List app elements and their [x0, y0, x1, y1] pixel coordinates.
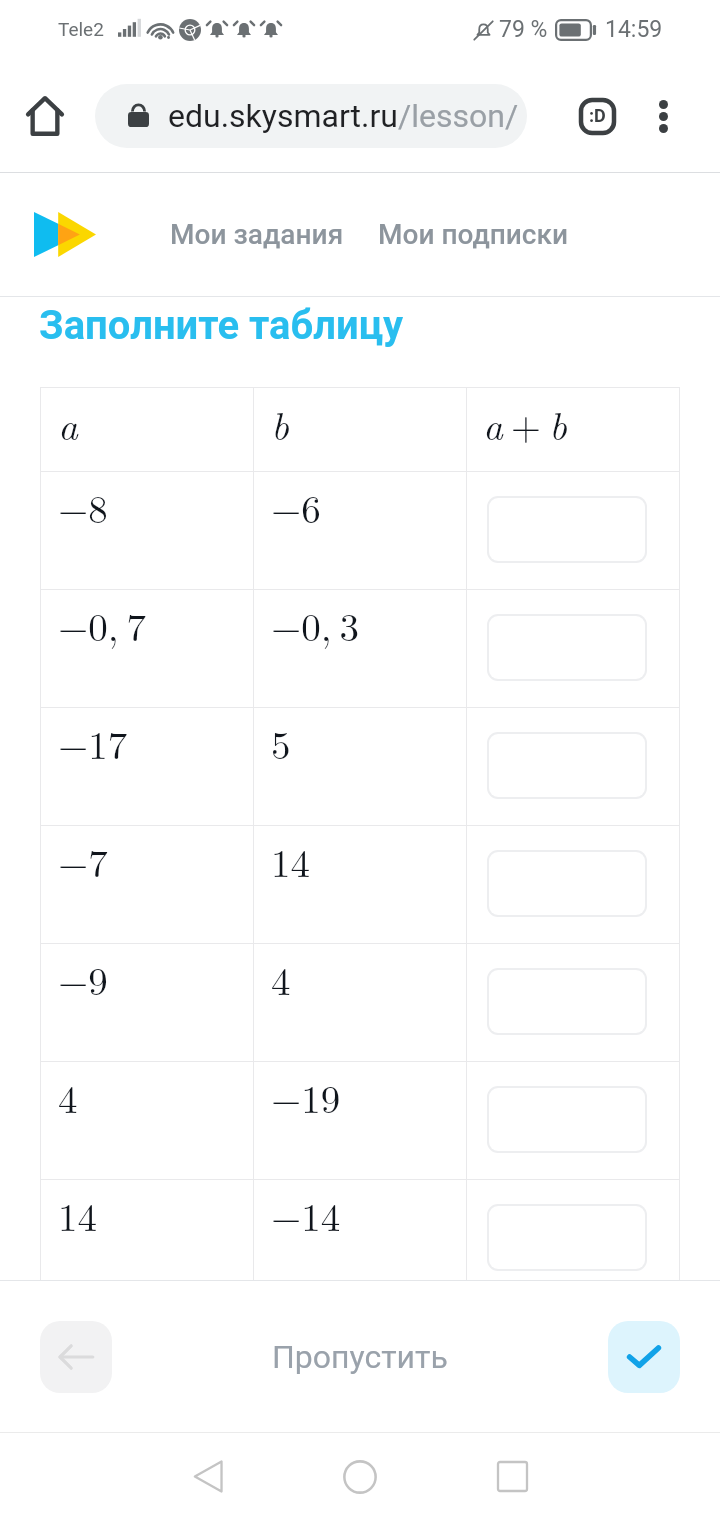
button[interactable]: edu.skysmart.ru: [95, 84, 527, 148]
staticText: 79 %: [499, 16, 548, 43]
staticText: 14: [271, 833, 311, 888]
staticText: Tele2: [58, 18, 104, 40]
staticText: −0, 7: [58, 597, 146, 652]
staticText: −19: [271, 1069, 341, 1124]
button[interactable]: Мои задания: [170, 208, 344, 261]
button[interactable]: Пропустить: [256, 1324, 464, 1390]
staticText: Мои подписки: [378, 218, 569, 251]
button[interactable]: Back: [40, 1321, 112, 1393]
staticText: Мои задания: [170, 218, 344, 251]
button[interactable]: Back: [152, 1433, 264, 1520]
staticText: −17: [58, 715, 128, 770]
button[interactable]: Confirm: [608, 1321, 680, 1393]
button[interactable]: Recents: [456, 1433, 568, 1520]
staticText: −14: [271, 1187, 341, 1242]
staticText: +: [503, 396, 549, 451]
staticText: a: [58, 396, 78, 451]
button[interactable]: Мои подписки: [378, 208, 569, 261]
staticText: Пропустить: [272, 1338, 448, 1376]
staticText: 4: [58, 1069, 78, 1124]
staticText: edu.skysmart.ru: [168, 97, 398, 135]
staticText: b: [271, 396, 289, 451]
staticText: Заполните таблицу: [39, 302, 404, 349]
staticText: 4: [271, 951, 291, 1006]
staticText: /lesson/: [398, 97, 519, 135]
staticText: 5: [271, 715, 291, 770]
button[interactable]: Tabs: [568, 87, 626, 145]
button[interactable]: Home: [14, 85, 76, 147]
button[interactable]: Home: [304, 1433, 416, 1520]
staticText: :D: [589, 105, 606, 126]
staticText: −0, 3: [271, 597, 359, 652]
staticText: a: [483, 396, 503, 451]
button[interactable]: More options: [634, 87, 692, 145]
staticText: 14:59: [605, 16, 663, 43]
staticText: −8: [58, 479, 108, 534]
staticText: b: [549, 396, 567, 451]
staticText: −9: [58, 951, 108, 1006]
staticText: 14: [58, 1187, 98, 1242]
staticText: −6: [271, 479, 321, 534]
staticText: −7: [58, 833, 108, 888]
